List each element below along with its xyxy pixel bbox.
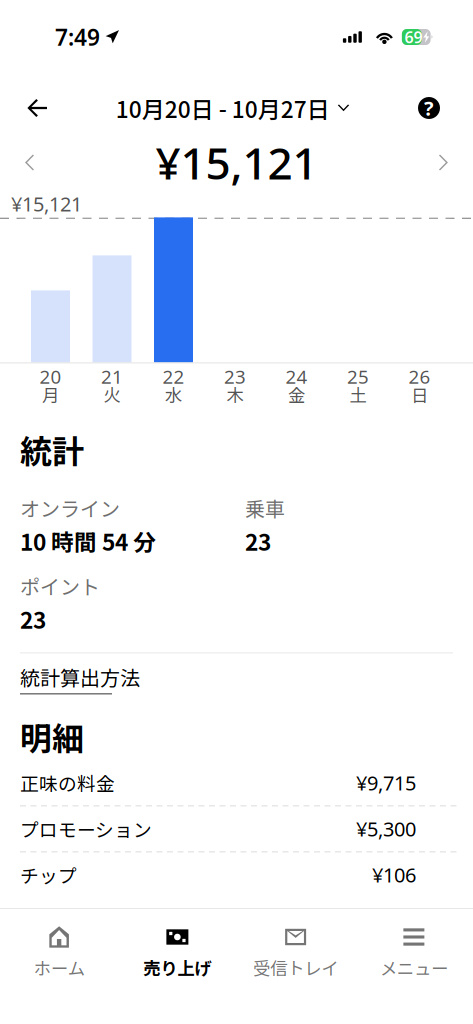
- staticText: 日: [411, 382, 428, 407]
- staticText: ¥9,715: [356, 770, 416, 796]
- staticText: 23: [245, 524, 271, 557]
- staticText: ?: [424, 95, 434, 121]
- staticText: 月: [42, 382, 59, 407]
- staticText: 10 時間 54 分: [20, 524, 156, 557]
- staticText: メニュー: [380, 955, 448, 980]
- staticText: ホーム: [34, 955, 85, 980]
- staticText: 受信トレイ: [253, 955, 338, 980]
- button[interactable]: Previous week: [0, 140, 56, 184]
- staticText: 土: [349, 382, 366, 407]
- staticText: 木: [226, 382, 243, 407]
- staticText: 21: [101, 364, 123, 389]
- staticText: 統計算出方法: [20, 662, 140, 691]
- staticText: 10月20日 - 10月27日: [116, 92, 330, 124]
- button[interactable]: メニュー: [355, 909, 473, 995]
- staticText: 売り上げ: [143, 955, 211, 980]
- staticText: チップ: [20, 861, 77, 888]
- staticText: 24: [285, 364, 307, 389]
- staticText: 23: [224, 364, 246, 389]
- button[interactable]: Next week: [417, 140, 473, 184]
- staticText: ¥15,121: [155, 133, 317, 192]
- staticText: ポイント: [20, 571, 100, 600]
- staticText: 20: [39, 364, 61, 389]
- staticText: 乗車: [245, 493, 285, 522]
- staticText: ¥106: [372, 862, 416, 888]
- button[interactable]: 10月20日 - 10月27日: [116, 80, 349, 136]
- staticText: ¥5,300: [356, 816, 416, 842]
- button[interactable]: 受信トレイ: [236, 909, 355, 995]
- staticText: 水: [165, 382, 182, 407]
- staticText: 7:49: [55, 22, 100, 52]
- staticText: 正味の料金: [20, 769, 115, 796]
- staticText: 69: [404, 26, 422, 48]
- staticText: 金: [288, 382, 305, 407]
- staticText: ¥15,121: [11, 191, 82, 217]
- button[interactable]: Help: [401, 85, 473, 131]
- staticText: 23: [20, 602, 46, 635]
- button[interactable]: Back: [0, 87, 64, 129]
- staticText: 火: [103, 382, 120, 407]
- staticText: 26: [408, 364, 430, 389]
- button[interactable]: ホーム: [0, 909, 118, 995]
- staticText: 22: [162, 364, 184, 389]
- staticText: プロモーション: [20, 815, 152, 842]
- button[interactable]: 売り上げ: [118, 909, 236, 995]
- button[interactable]: 統計算出方法: [20, 653, 140, 703]
- staticText: オンライン: [20, 493, 120, 522]
- staticText: 明細: [20, 713, 84, 759]
- staticText: 統計: [20, 426, 84, 472]
- staticText: 25: [347, 364, 369, 389]
